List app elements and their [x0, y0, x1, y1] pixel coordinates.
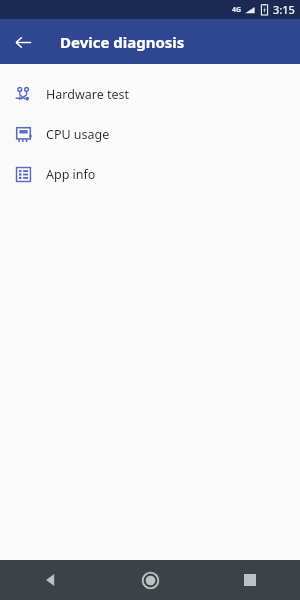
button[interactable]: Hardware test: [0, 74, 300, 114]
staticText: Hardware test: [46, 86, 129, 103]
staticText: CPU usage: [46, 126, 110, 143]
button[interactable]: App info: [0, 154, 300, 194]
staticText: App info: [46, 166, 96, 183]
button[interactable]: Back: [8, 27, 38, 57]
staticText: Device diagnosis: [60, 32, 185, 52]
staticText: 4G: [232, 5, 242, 15]
button[interactable]: Back: [0, 560, 100, 600]
button[interactable]: Recent apps: [200, 560, 300, 600]
button[interactable]: CPU usage: [0, 114, 300, 154]
staticText: 3:15: [273, 2, 295, 17]
button[interactable]: Home: [100, 560, 200, 600]
